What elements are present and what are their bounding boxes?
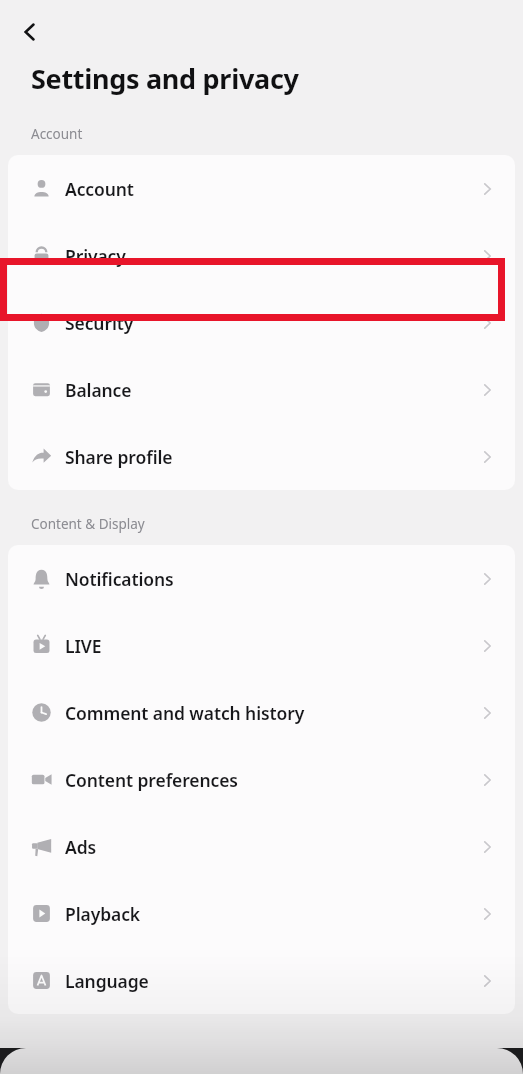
button[interactable]: Ads [8,813,515,880]
staticText: Content & Display [31,515,145,533]
button[interactable]: Language [8,947,515,1014]
staticText: Account [31,125,83,143]
staticText: Privacy [65,244,126,268]
staticText: Language [65,969,149,993]
staticText: Playback [65,902,141,926]
staticText: Settings and privacy [31,60,299,97]
button[interactable]: Balance [8,356,515,423]
button[interactable]: Account [8,155,515,222]
button[interactable]: Share profile [8,423,515,490]
staticText: Comment and watch history [65,701,305,725]
button[interactable]: Comment and watch history [8,679,515,746]
button[interactable]: Notifications [8,545,515,612]
button[interactable]: Security [8,289,515,356]
button[interactable]: Playback [8,880,515,947]
button[interactable]: Content preferences [8,746,515,813]
button[interactable]: Back [8,10,52,54]
staticText: LIVE [65,634,102,658]
button[interactable]: LIVE [8,612,515,679]
staticText: Account [65,177,134,201]
staticText: Ads [65,835,97,859]
button[interactable]: Privacy [8,222,515,289]
staticText: Security [65,311,134,335]
staticText: Share profile [65,445,173,469]
staticText: Balance [65,378,132,402]
staticText: Content preferences [65,768,238,792]
staticText: Notifications [65,567,174,591]
